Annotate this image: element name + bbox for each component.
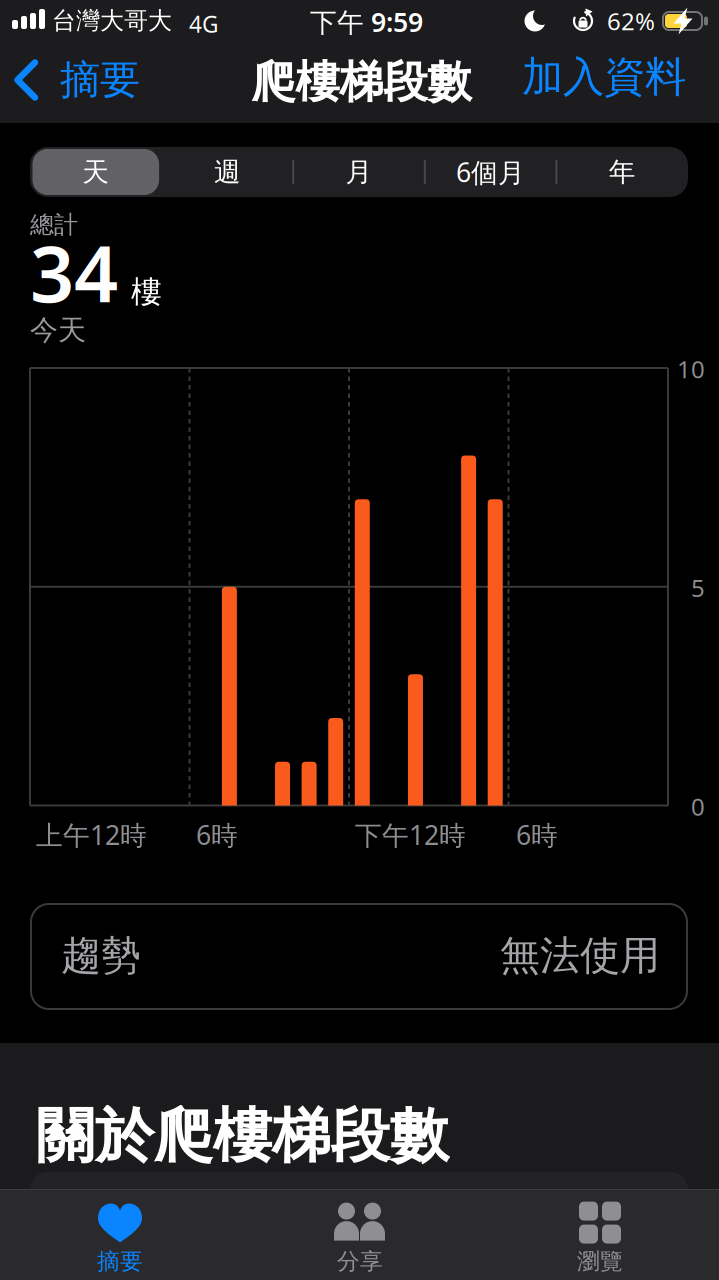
- staticText: 台灣大哥大: [52, 6, 172, 35]
- button[interactable]: 月: [293, 147, 425, 197]
- staticText: 月: [345, 156, 372, 188]
- staticText: 摘要: [60, 55, 140, 104]
- button[interactable]: 加入資料: [522, 55, 686, 99]
- staticText: 天: [82, 156, 109, 188]
- staticText: 10: [677, 353, 705, 385]
- staticText: 下午 9:59: [310, 4, 423, 39]
- staticText: 趨勢: [61, 931, 141, 980]
- staticText: 關於爬樓梯段數: [36, 1100, 449, 1172]
- staticText: 上午12時: [36, 817, 147, 852]
- button[interactable]: 年: [556, 147, 688, 197]
- staticText: 5: [691, 572, 705, 604]
- staticText: 瀏覽: [577, 1248, 623, 1275]
- staticText: 樓: [131, 273, 162, 311]
- button[interactable]: 瀏覽: [525, 1198, 675, 1280]
- staticText: 6個月: [456, 154, 525, 190]
- staticText: 6時: [516, 817, 558, 852]
- button[interactable]: 週: [162, 147, 293, 197]
- button[interactable]: 6個月: [425, 147, 556, 197]
- staticText: 今天: [30, 313, 86, 347]
- staticText: 摘要: [97, 1248, 143, 1275]
- staticText: 4G: [189, 9, 219, 39]
- button[interactable]: 摘要: [14, 58, 140, 102]
- staticText: 爬樓梯段數: [251, 55, 471, 109]
- staticText: 下午12時: [355, 817, 466, 852]
- staticText: 34: [30, 221, 118, 324]
- staticText: 年: [609, 156, 636, 188]
- staticText: 分享: [337, 1248, 383, 1275]
- staticText: 62%: [607, 5, 655, 37]
- button[interactable]: 分享: [285, 1198, 435, 1280]
- staticText: 總計: [30, 210, 78, 239]
- button[interactable]: 天: [30, 147, 162, 197]
- staticText: 加入資料: [522, 52, 686, 102]
- staticText: 週: [214, 156, 241, 188]
- staticText: 0: [691, 790, 705, 822]
- button[interactable]: 摘要: [45, 1198, 195, 1280]
- staticText: 無法使用: [500, 931, 660, 980]
- staticText: 6時: [196, 817, 238, 852]
